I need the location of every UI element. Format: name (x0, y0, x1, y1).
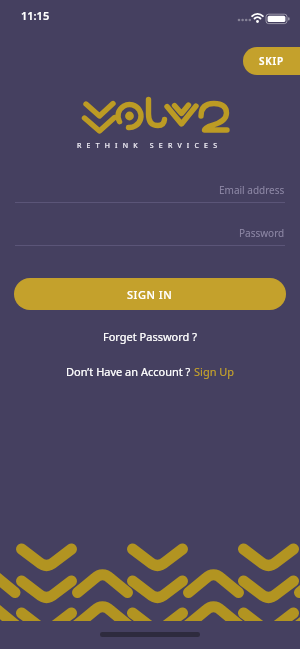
button[interactable]: Email address (15, 178, 285, 202)
staticText: Password (239, 226, 285, 240)
staticText: RETHINK SERVICES (77, 141, 223, 151)
button[interactable]: SKIP (243, 47, 300, 75)
button[interactable]: SIGN IN (14, 278, 286, 310)
button[interactable]: Sign Up (194, 364, 235, 379)
staticText: Email address (219, 183, 285, 197)
staticText: SIGN IN (127, 287, 173, 302)
button[interactable]: Forget Password ? (0, 329, 300, 344)
staticText: 11:15 (21, 8, 50, 23)
staticText: Don’t Have an Account ? (66, 364, 194, 379)
staticText: SKIP (259, 54, 285, 68)
staticText: Forget Password ? (103, 329, 197, 344)
button[interactable]: Password (15, 221, 285, 245)
